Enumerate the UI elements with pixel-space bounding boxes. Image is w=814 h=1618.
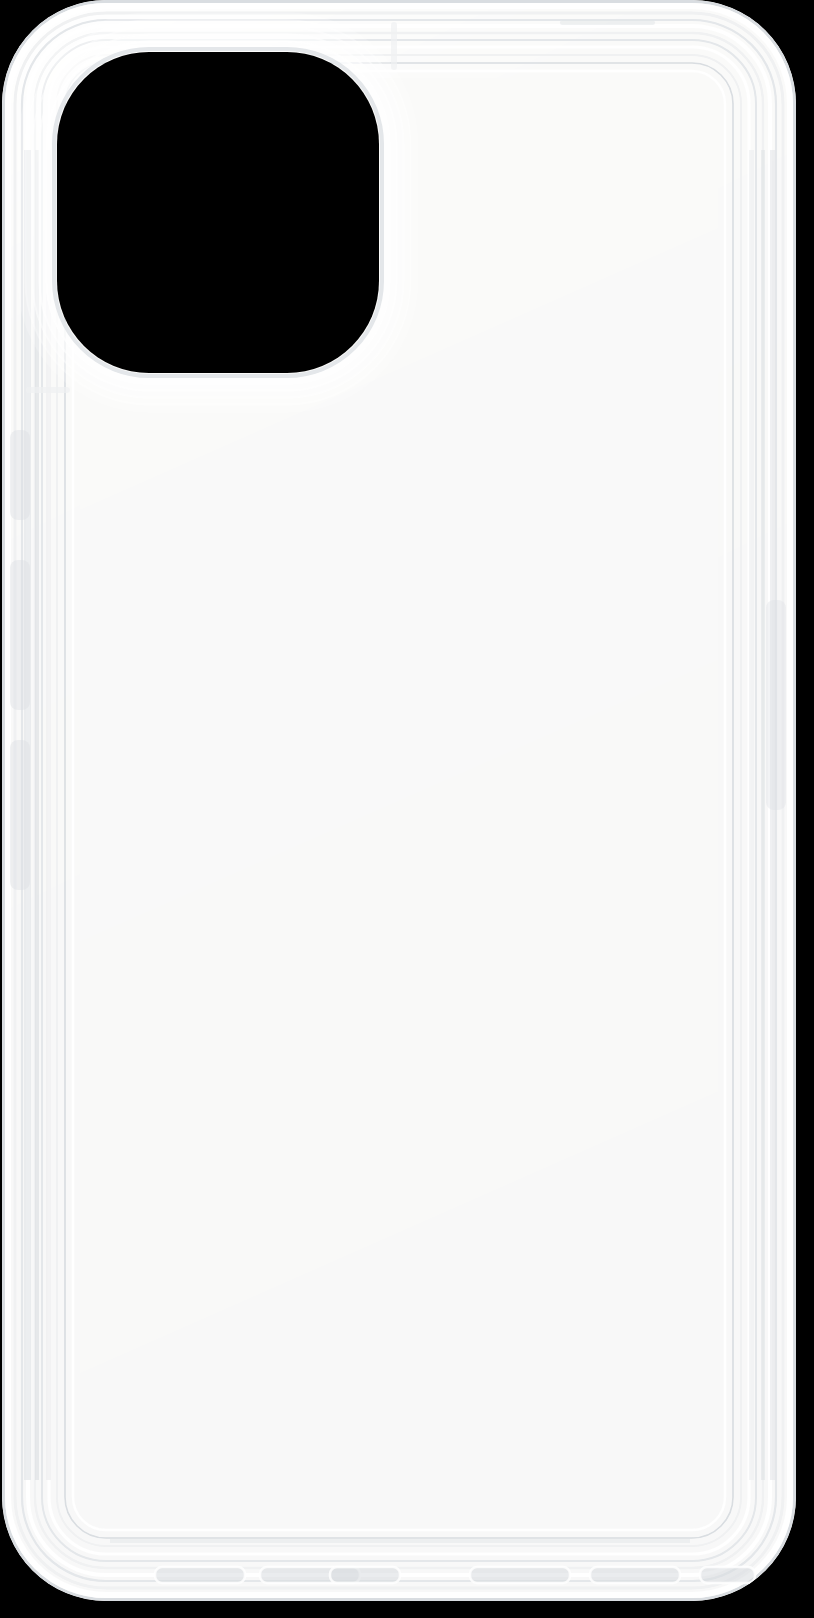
button[interactable]: Clear phone case product photo — [0, 0, 814, 1618]
